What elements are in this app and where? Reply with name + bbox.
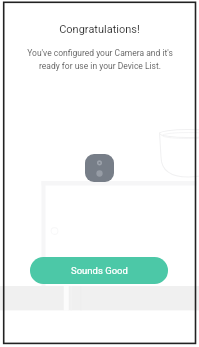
staticText: You've configured your Camera and it's r… [27,48,173,71]
button[interactable]: Sounds Good [30,257,168,284]
staticText: Sounds Good [71,265,128,276]
staticText: Congratulations! [59,23,140,36]
